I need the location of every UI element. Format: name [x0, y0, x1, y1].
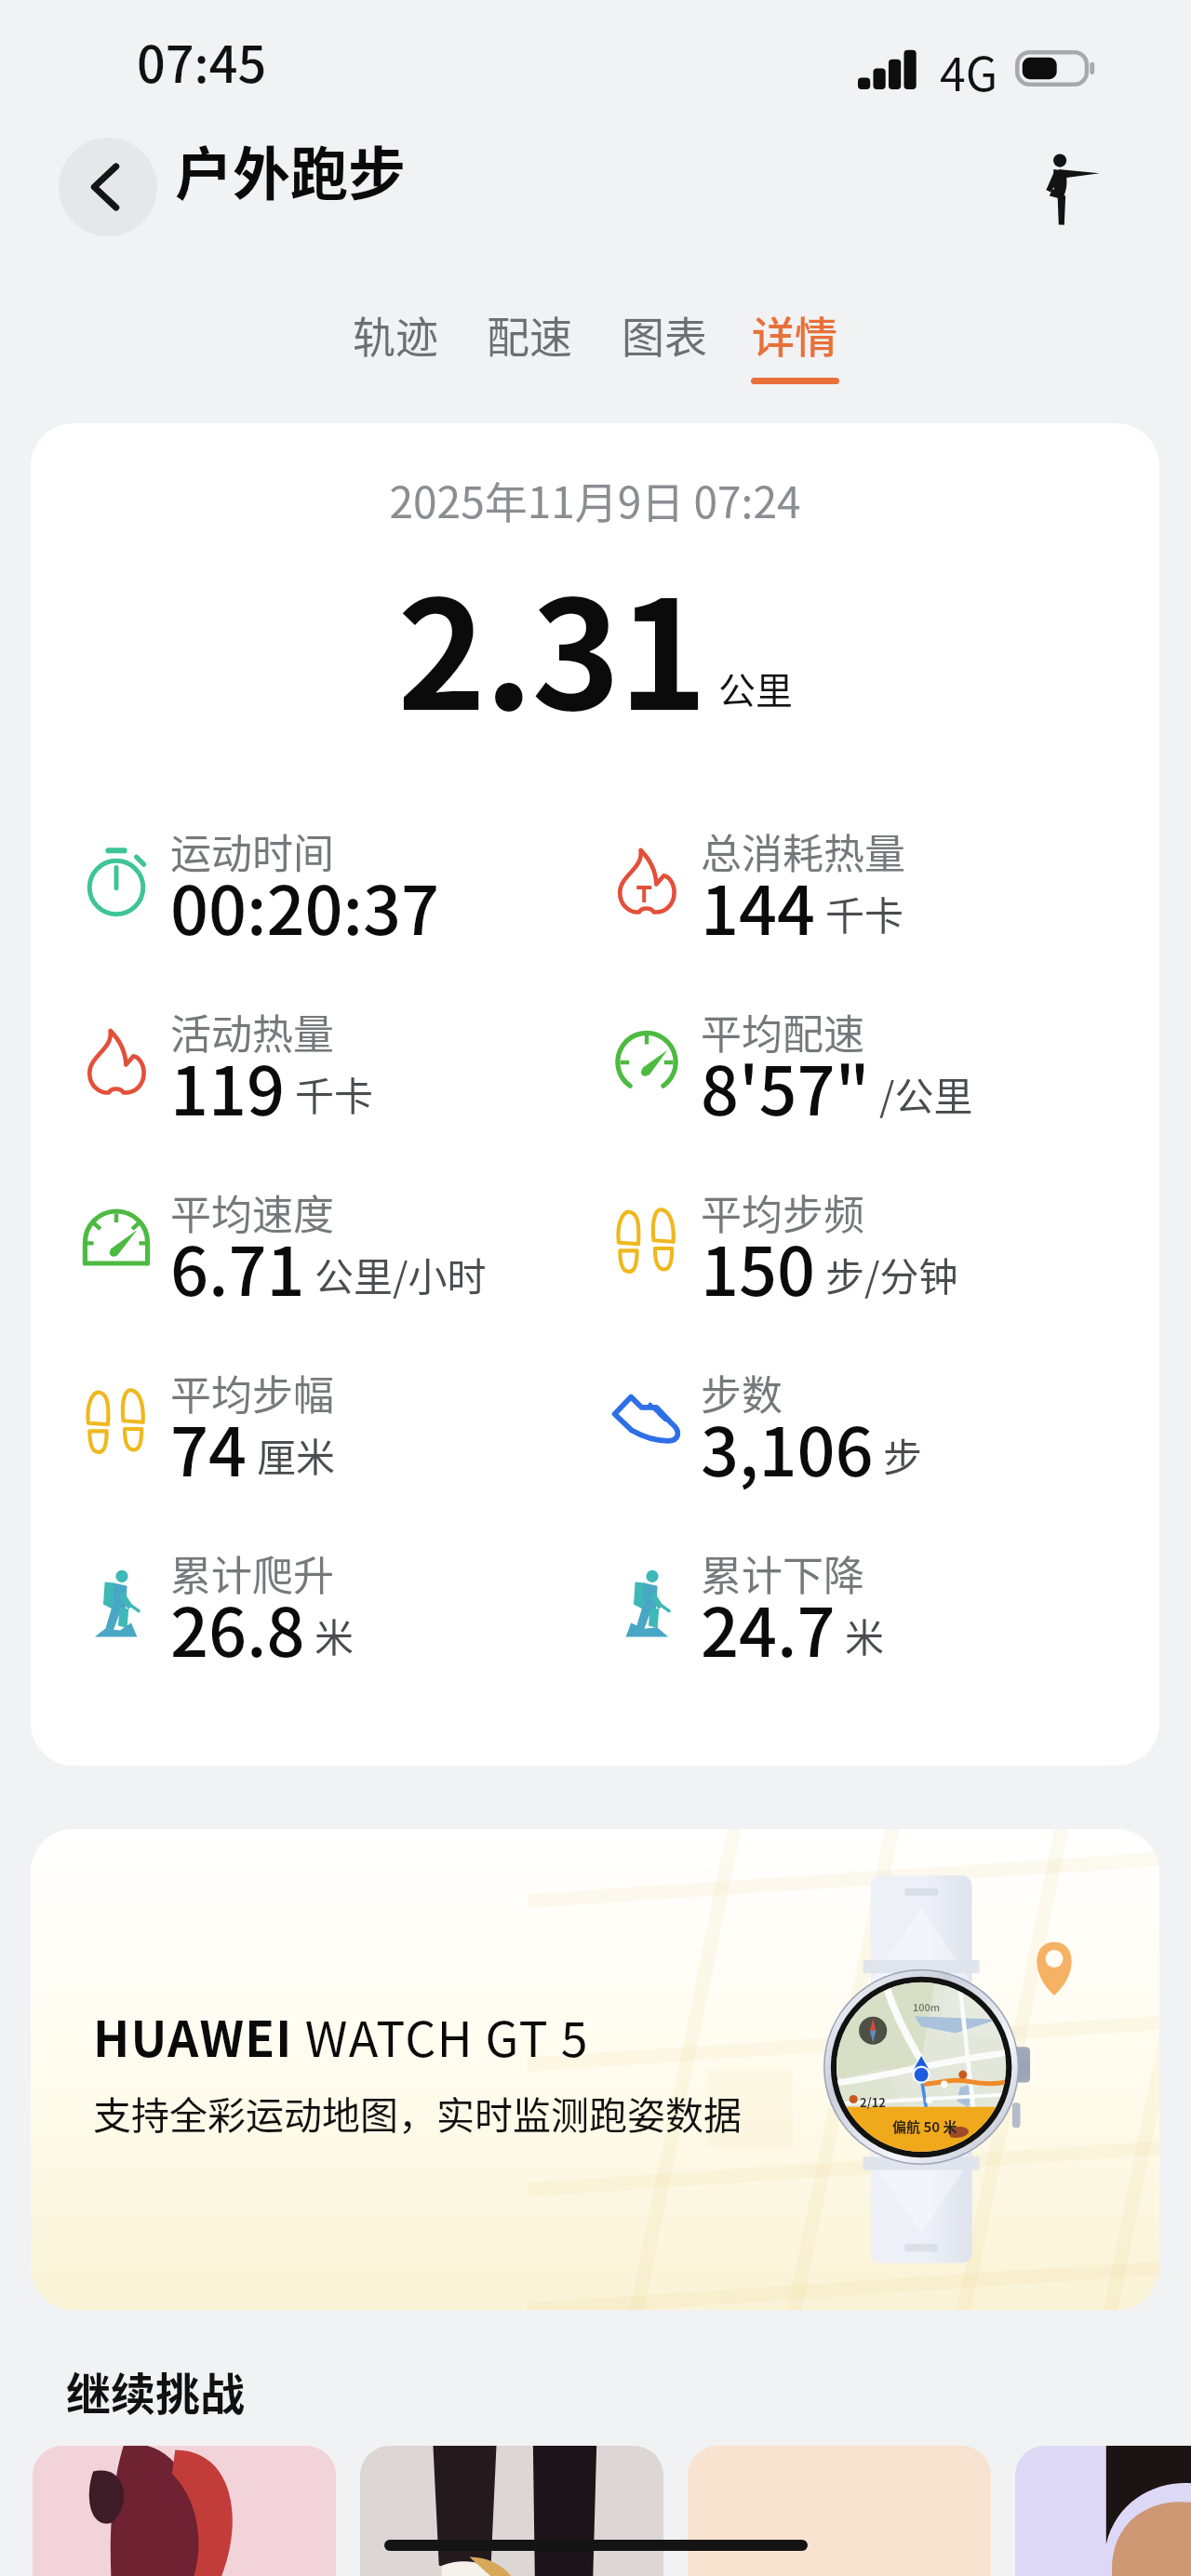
staticText: 74 [170, 1398, 248, 1495]
staticText: 07:45 [137, 24, 267, 97]
staticText: 累计下降 [701, 1543, 864, 1603]
staticText: 100m [913, 1999, 941, 2014]
button[interactable] [1015, 2446, 1191, 2576]
staticText: 平均步频 [701, 1182, 864, 1242]
staticText: 配速 [487, 303, 572, 366]
staticText: 150 [701, 1218, 816, 1315]
button[interactable] [688, 2446, 991, 2576]
staticText: 平均配速 [701, 1002, 864, 1061]
staticText: 6.71 [170, 1218, 305, 1315]
staticText: 米 [845, 1607, 885, 1663]
button[interactable]: 配速 [464, 303, 595, 396]
staticText: 公里 [718, 661, 793, 715]
staticText: 2.31 [397, 535, 706, 754]
staticText: 4G [940, 37, 998, 104]
staticText: /公里 [879, 1065, 973, 1122]
staticText: 偏航 50 米 [892, 2116, 957, 2137]
staticText: 厘米 [257, 1426, 336, 1483]
staticText: 24.7 [701, 1579, 836, 1675]
staticText: 米 [314, 1607, 355, 1663]
button[interactable]: Running activity [1027, 148, 1111, 232]
staticText: 2/12 [860, 2093, 887, 2111]
staticText: 图表 [622, 303, 707, 366]
staticText: 累计爬升 [170, 1543, 334, 1603]
staticText: 26.8 [170, 1579, 305, 1675]
staticText: HUAWEI [93, 2001, 293, 2071]
staticText: 144 [701, 857, 816, 954]
button[interactable]: Back [59, 138, 157, 236]
staticText: 步 [883, 1426, 923, 1483]
button[interactable]: 图表 [599, 303, 729, 396]
staticText: 运动时间 [170, 821, 334, 881]
staticText: 支持全彩运动地图，实时监测跑姿数据 [93, 2085, 742, 2140]
button[interactable] [360, 2446, 663, 2576]
button[interactable] [33, 2446, 336, 2576]
staticText: 3,106 [701, 1398, 874, 1495]
staticText: 千卡 [295, 1065, 374, 1122]
staticText: 步数 [701, 1363, 783, 1422]
button[interactable]: 轨迹 [330, 303, 461, 396]
staticText: 千卡 [825, 885, 904, 941]
staticText: 总消耗热量 [701, 821, 905, 881]
staticText: 继续挑战 [66, 2358, 246, 2423]
staticText: 00:20:37 [170, 857, 440, 954]
button[interactable]: HUAWEI [31, 1829, 1159, 2310]
staticText: 2025年11月9日 07:24 [31, 469, 1159, 531]
staticText: 平均步幅 [170, 1363, 334, 1422]
staticText: 平均速度 [170, 1182, 334, 1242]
button[interactable]: 详情 [729, 303, 860, 396]
staticText: WATCH GT 5 [293, 2001, 589, 2071]
staticText: 轨迹 [353, 303, 438, 366]
staticText: 119 [170, 1037, 286, 1134]
staticText: 8'57" [701, 1037, 870, 1134]
staticText: 详情 [752, 303, 837, 366]
staticText: 公里/小时 [314, 1246, 487, 1302]
staticText: 活动热量 [170, 1002, 334, 1061]
staticText: 户外跑步 [175, 128, 407, 212]
staticText: 步/分钟 [825, 1246, 958, 1302]
